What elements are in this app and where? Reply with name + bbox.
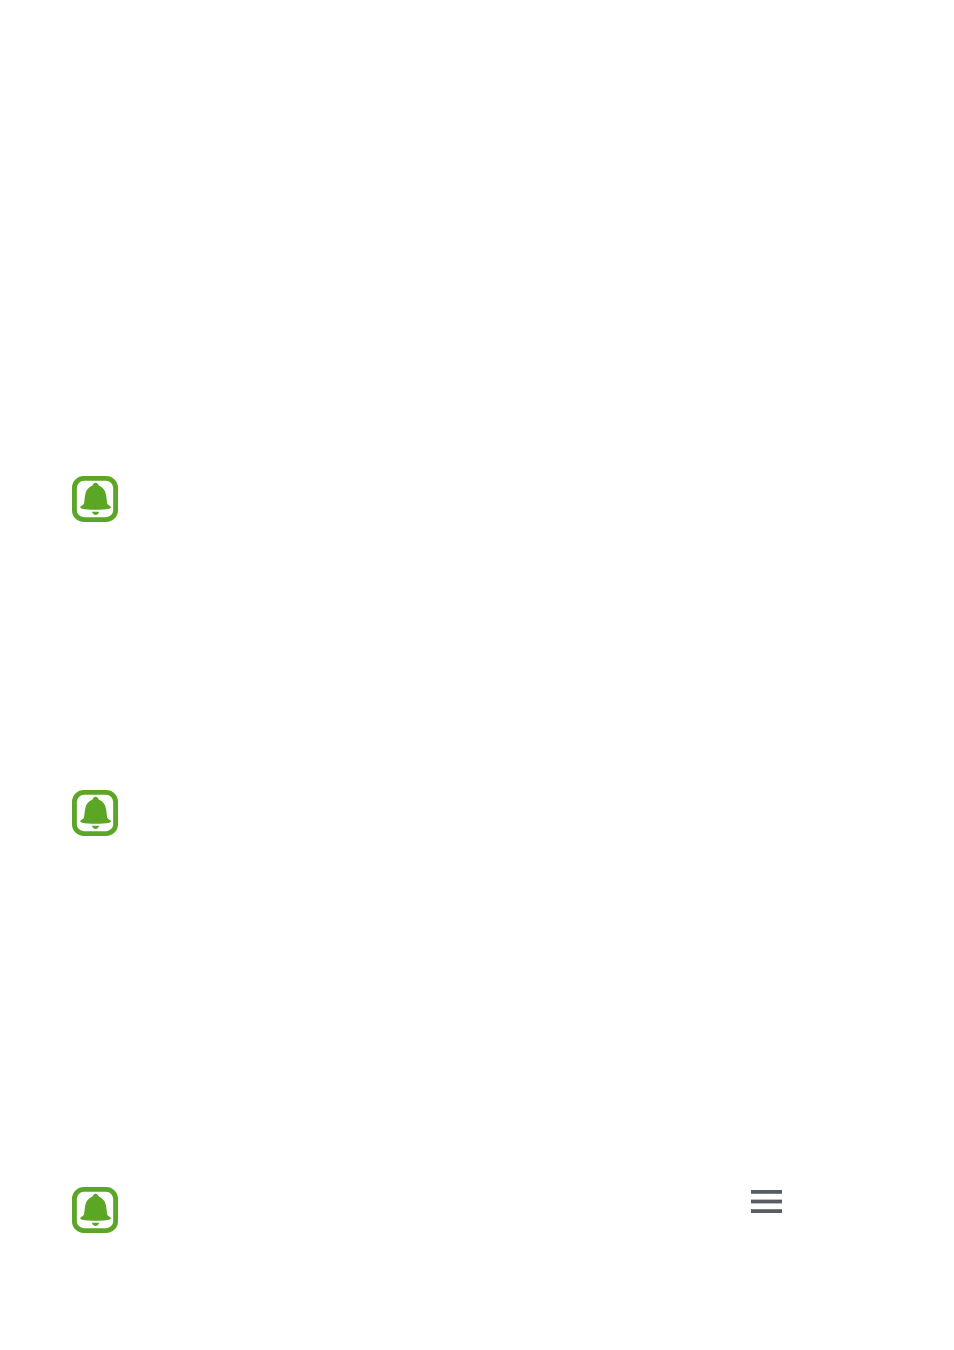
button[interactable]: Notification alert xyxy=(0,0,954,522)
button[interactable]: Notification alert xyxy=(72,1187,118,1233)
button[interactable]: Notification alert xyxy=(72,790,118,836)
button[interactable]: Menu xyxy=(751,1190,782,1213)
button[interactable]: Notification alert xyxy=(72,476,118,522)
button[interactable]: Notification alert xyxy=(0,522,954,836)
button[interactable]: Notification alert xyxy=(0,836,954,1233)
